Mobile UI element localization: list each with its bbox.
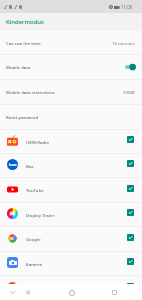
staticText: Chrome: [26, 285, 43, 291]
staticText: 10 minutes: [112, 40, 135, 46]
button[interactable]: Mobile data: [0, 55, 142, 79]
staticText: Mobile data: [6, 64, 31, 70]
staticText: 11:06: [121, 4, 133, 10]
staticText: Box: [26, 163, 34, 169]
staticText: Kindermodus: [6, 18, 44, 26]
staticText: Display Tester: [26, 212, 55, 218]
staticText: Mobile data restrictions: [6, 89, 55, 95]
button[interactable]: Hide navigation bar: [5, 285, 20, 300]
button[interactable]: UKW-Radio: [0, 130, 142, 153]
button[interactable]: Home: [64, 285, 79, 300]
staticText: box: [9, 162, 17, 168]
button[interactable]: Back: [20, 285, 35, 300]
staticText: Google: [26, 236, 41, 242]
button[interactable]: YouTube: [0, 178, 142, 202]
button[interactable]: Kamera: [0, 252, 142, 275]
staticText: UKW-Radio: [26, 139, 49, 145]
staticText: 30MB: [123, 89, 135, 95]
button[interactable]: Display Tester: [0, 203, 142, 226]
staticText: Can use the time: [6, 40, 41, 46]
button[interactable]: Reset password: [0, 105, 142, 129]
staticText: Kamera: [26, 261, 42, 267]
button[interactable]: Can use the time: [0, 31, 142, 54]
button[interactable]: Recent apps: [107, 285, 122, 300]
staticText: YouTube: [26, 187, 44, 193]
button[interactable]: box: [0, 154, 142, 177]
button[interactable]: Mobile data restrictions: [0, 80, 142, 104]
button[interactable]: Google: [0, 227, 142, 251]
staticText: Reset password: [6, 114, 39, 120]
button[interactable]: Chrome: [0, 276, 142, 300]
